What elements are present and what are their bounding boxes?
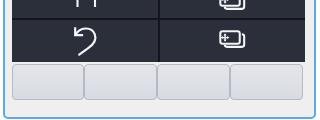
button[interactable]: Undo: [12, 20, 158, 62]
button[interactable]: Tool 1: [12, 64, 84, 100]
button[interactable]: Duplicate: [159, 20, 305, 62]
other: Duplicate: [217, 0, 248, 6]
button[interactable]: Tool 2: [84, 64, 157, 100]
button[interactable]: More tools: [12, 0, 305, 18]
button[interactable]: Tool 3: [157, 64, 230, 100]
other: Duplicate: [217, 26, 248, 57]
button[interactable]: Tool 4: [230, 64, 303, 100]
other: Undo: [70, 26, 101, 57]
